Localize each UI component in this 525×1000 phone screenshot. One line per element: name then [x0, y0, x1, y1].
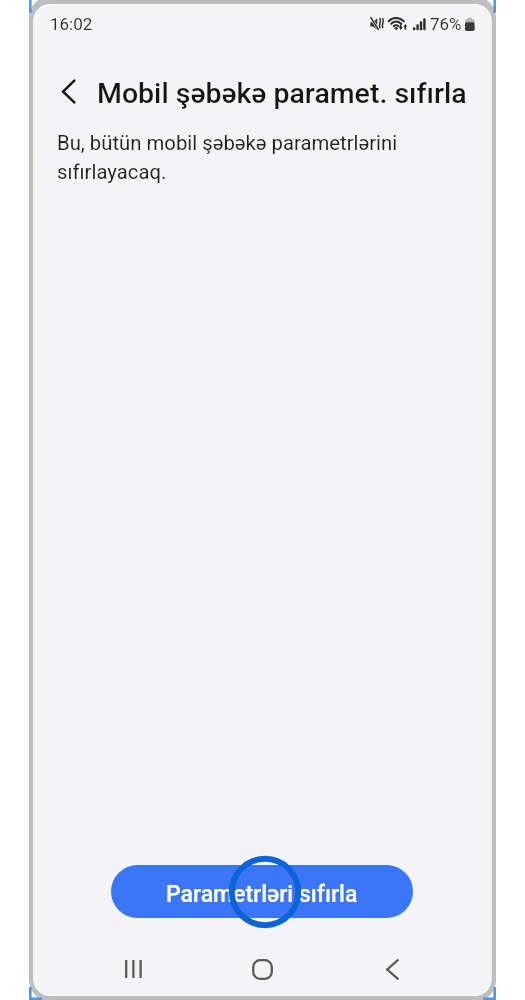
staticText: Bu, bütün mobil şəbəkə parametrlərini sı… [57, 131, 409, 184]
staticText: Parametrləri sıfırla [166, 881, 358, 908]
button[interactable]: Recent apps [91, 945, 175, 993]
button[interactable]: Home [220, 945, 304, 993]
staticText: 16:02 [50, 14, 93, 34]
button[interactable]: Back [350, 945, 434, 993]
staticText: 76% [430, 14, 462, 34]
staticText: Mobil şəbəkə paramet. sıfırla [97, 77, 467, 110]
button[interactable]: Parametrləri sıfırla [111, 865, 413, 918]
button[interactable]: Back [41, 69, 87, 117]
